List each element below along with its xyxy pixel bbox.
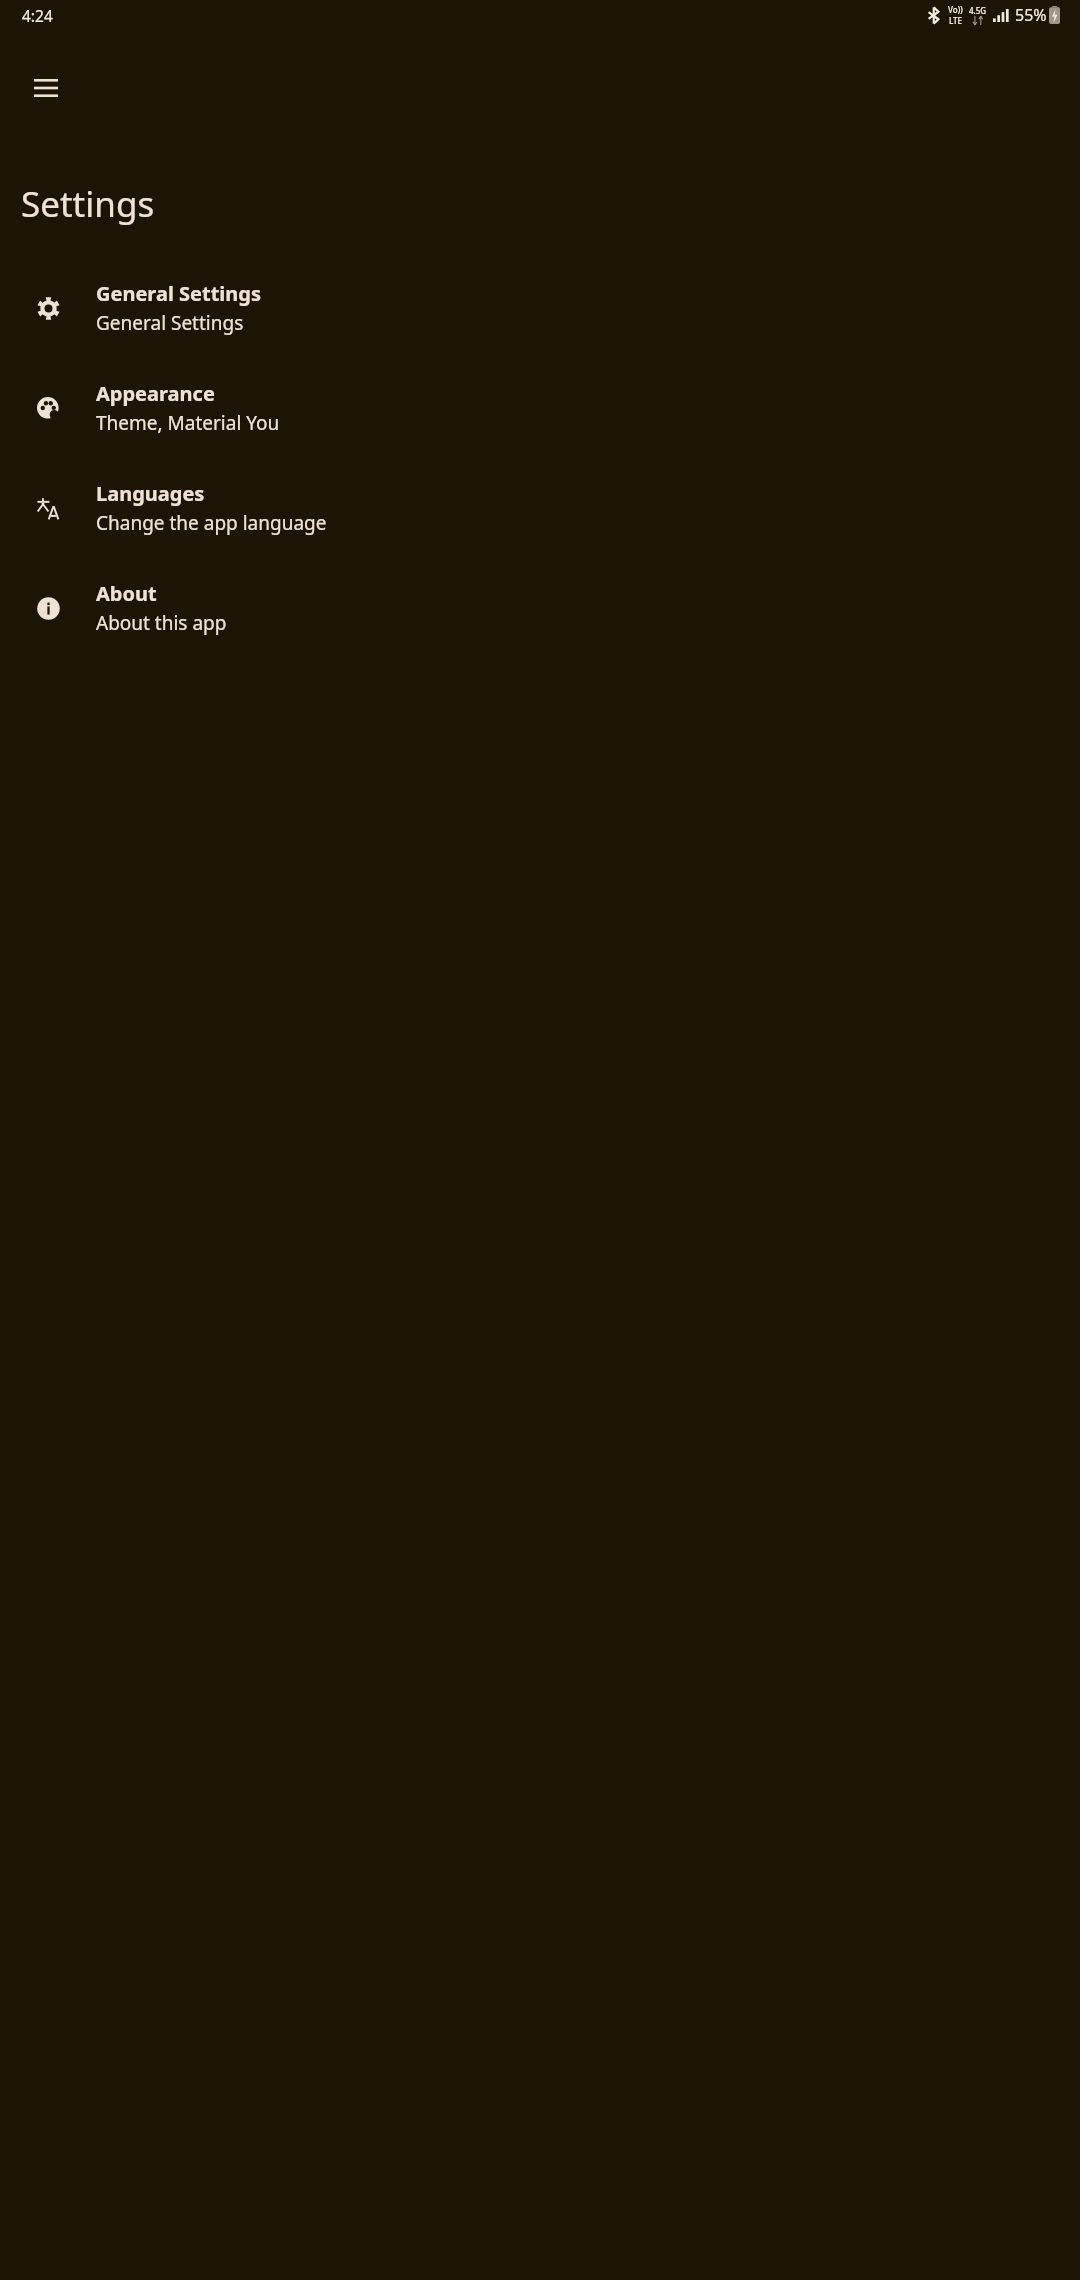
button[interactable]: Languages — [0, 458, 1080, 558]
button[interactable]: Open navigation menu — [10, 52, 82, 124]
staticText: Languages — [96, 480, 205, 507]
button[interactable]: Appearance — [0, 358, 1080, 458]
staticText: Theme, Material You — [96, 410, 280, 436]
staticText: LTE — [949, 15, 963, 26]
button[interactable]: About — [0, 558, 1080, 658]
staticText: About — [96, 580, 157, 607]
staticText: 4.5G — [969, 5, 987, 16]
staticText: About this app — [96, 610, 227, 636]
staticText: 55% — [1015, 4, 1047, 26]
staticText: General Settings — [96, 310, 244, 336]
staticText: Change the app language — [96, 510, 327, 536]
staticText: 4:24 — [22, 5, 53, 26]
button[interactable]: General Settings — [0, 258, 1080, 358]
staticText: Settings — [21, 180, 155, 228]
staticText: Vo)) — [948, 4, 963, 15]
staticText: Appearance — [96, 380, 215, 407]
staticText: General Settings — [96, 280, 262, 307]
